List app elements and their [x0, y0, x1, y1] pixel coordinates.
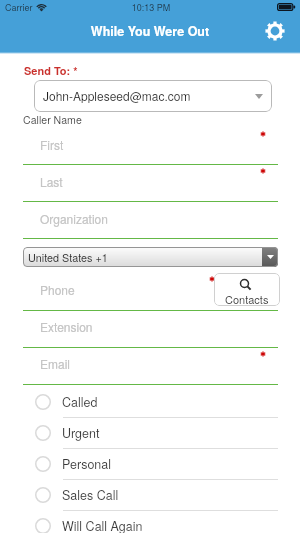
staticText: While You Were Out [0, 22, 300, 40]
staticText: Personal [62, 455, 112, 473]
staticText: Will Call Again [62, 517, 143, 533]
button[interactable]: Settings [262, 18, 288, 44]
button[interactable]: Contacts [214, 273, 280, 306]
staticText: United States +1 [28, 250, 108, 265]
staticText: Send To: * [24, 63, 78, 79]
staticText: Called [62, 393, 98, 411]
staticText: Organization [40, 210, 108, 227]
button[interactable]: John-Appleseed@mac.com [34, 80, 272, 112]
staticText: Sales Call [62, 486, 119, 504]
staticText: Carrier [5, 1, 33, 14]
staticText: 10:13 PM [1, 1, 300, 14]
button[interactable]: Urgent [22, 417, 278, 448]
staticText: Caller Name [23, 112, 82, 127]
staticText: Email [40, 355, 71, 372]
button[interactable]: Will Call Again [22, 510, 278, 533]
staticText: First [40, 136, 64, 153]
staticText: Last [40, 173, 63, 190]
button[interactable]: United States +1 [23, 247, 278, 267]
staticText: Urgent [62, 424, 100, 442]
button[interactable]: Sales Call [22, 479, 278, 510]
staticText: John-Appleseed@mac.com [43, 87, 191, 104]
button[interactable]: Called [22, 386, 278, 417]
staticText: Contacts [225, 291, 269, 306]
staticText: Phone [40, 281, 75, 298]
button[interactable]: Personal [22, 448, 278, 479]
staticText: Extension [40, 318, 93, 335]
